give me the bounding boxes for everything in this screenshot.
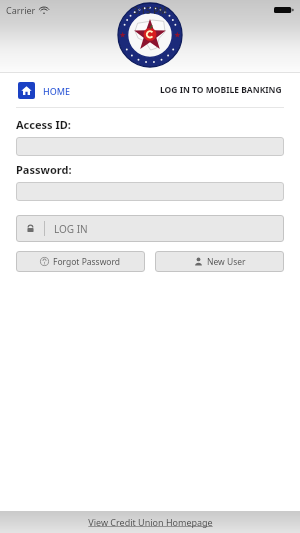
staticText: Carrier — [6, 4, 36, 16]
other: Battery full — [274, 5, 294, 15]
staticText: Forgot Password — [53, 256, 121, 268]
staticText: Password: — [16, 162, 72, 177]
staticText: Access ID: — [16, 117, 71, 132]
button[interactable]: New User — [155, 251, 284, 272]
other: Jackson County Teachers Credit Union log… — [117, 2, 183, 68]
other: Lock — [26, 224, 35, 233]
button[interactable]: Home — [18, 80, 71, 101]
button[interactable]: Forgot Password — [16, 251, 145, 272]
other: Wi-Fi signal — [39, 5, 49, 15]
button[interactable]: Lock — [16, 215, 284, 242]
button[interactable]: LOG IN TO MOBILE BANKING — [160, 84, 282, 96]
button[interactable] — [16, 182, 284, 201]
staticText: LOG IN — [54, 222, 88, 236]
button[interactable]: View Credit Union Homepage — [84, 512, 217, 532]
other: Home — [21, 85, 32, 96]
staticText: 3:15 PM — [133, 4, 167, 16]
staticText: HOME — [43, 85, 71, 97]
button[interactable] — [16, 137, 284, 156]
staticText: New User — [207, 256, 246, 268]
